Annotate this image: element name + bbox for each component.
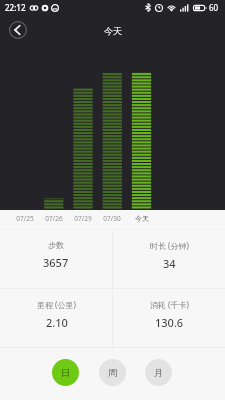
button[interactable]: 里程 (公里)	[0, 289, 112, 347]
staticText: 07/25	[16, 214, 34, 223]
staticText: 月	[154, 367, 164, 379]
staticText: 07/26	[45, 214, 63, 223]
staticText: 22:12	[5, 2, 26, 13]
button[interactable]: Back	[7, 19, 29, 41]
staticText: 消耗 (千卡)	[150, 299, 189, 310]
staticText: 周	[108, 367, 118, 379]
staticText: 60	[209, 2, 219, 13]
button[interactable]: 日	[52, 359, 79, 386]
staticText: 里程 (公里)	[37, 299, 76, 310]
staticText: 步数	[48, 240, 64, 250]
staticText: 日	[61, 367, 71, 379]
button[interactable]: 月	[145, 359, 172, 386]
staticText: 时长 (分钟)	[150, 240, 189, 251]
staticText: 34	[163, 256, 176, 271]
staticText: 130.6	[155, 315, 184, 330]
staticText: 07/29	[74, 214, 92, 223]
button[interactable]: 消耗 (千卡)	[113, 289, 225, 347]
button[interactable]: 时长 (分钟)	[113, 230, 225, 288]
staticText: 3657	[43, 255, 69, 270]
staticText: 今天	[104, 25, 122, 36]
staticText: 07/30	[103, 214, 121, 223]
button[interactable]: 步数	[0, 230, 112, 288]
staticText: 今天	[135, 214, 149, 223]
button[interactable]: 周	[99, 359, 126, 386]
staticText: 2.10	[46, 315, 68, 330]
